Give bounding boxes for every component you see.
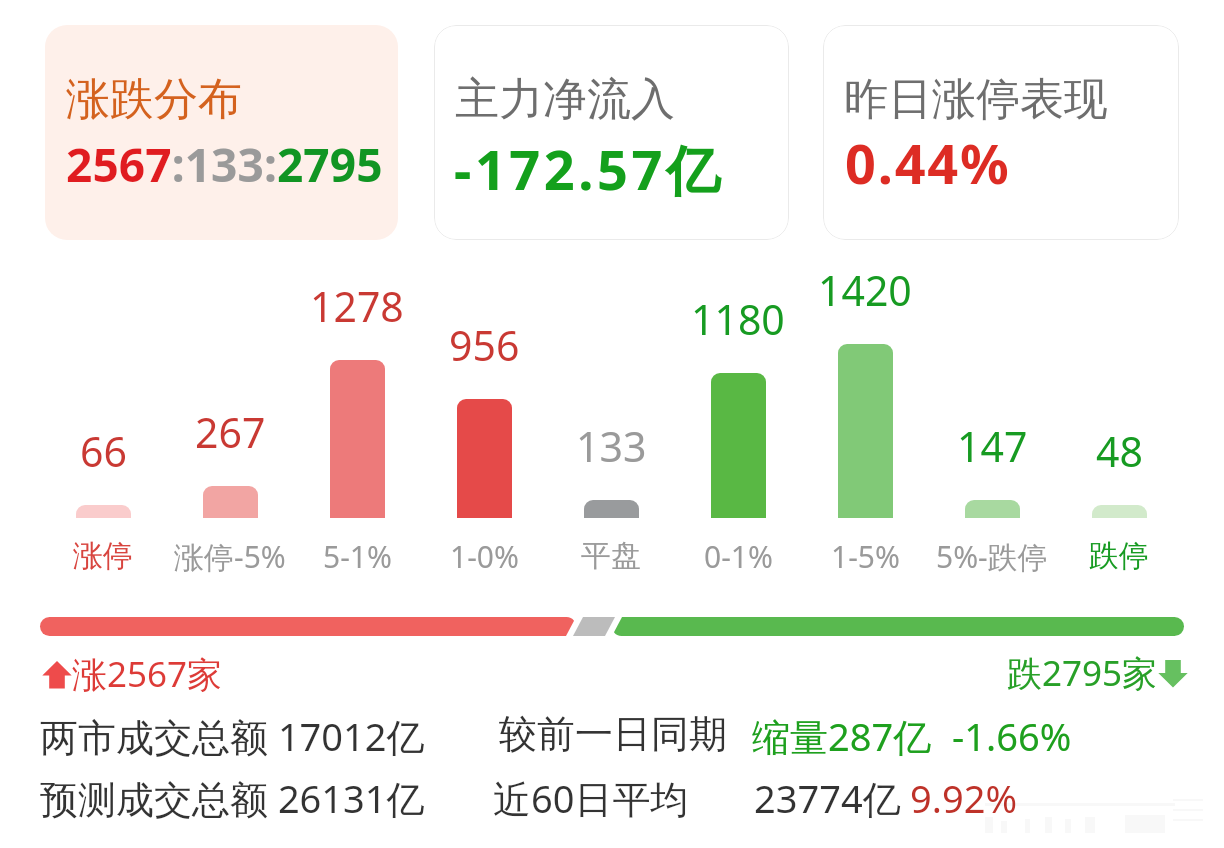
button[interactable]: 267 [167,258,293,576]
button[interactable]: 147 [929,258,1055,576]
staticText: 0-1% [704,536,773,576]
staticText: 近60日平均 [493,772,689,824]
staticText: 5%-跌停 [936,536,1048,576]
other: Advancers [42,659,72,689]
staticText: 133 [576,418,647,470]
button[interactable]: 昨日涨停表现 [823,25,1179,240]
button[interactable]: Advance decline ratio [40,617,1184,636]
staticText: 48 [1096,423,1143,475]
staticText: 1420 [818,262,912,314]
staticText: 5-1% [323,536,392,576]
staticText: 1-5% [831,536,900,576]
staticText: 涨2567家 [72,650,223,698]
staticText: 主力净流入 [455,72,675,127]
staticText: -172.57亿 [454,132,724,206]
staticText: 1180 [691,291,785,343]
staticText: 预测成交总额 26131亿 [40,772,425,824]
staticText: 跌2795家 [1007,649,1158,697]
staticText: 0.44% [845,126,1011,200]
button[interactable]: 1180 [675,258,801,576]
staticText: 147 [957,418,1028,470]
staticText: 两市成交总额 17012亿 [40,710,425,762]
staticText: 昨日涨停表现 [844,72,1108,127]
button[interactable]: 956 [421,258,547,576]
staticText: 23774亿 [754,772,901,824]
button[interactable]: 66 [40,258,166,576]
staticText: 267 [195,404,266,456]
staticText: 1-0% [450,536,519,576]
staticText: 2567:133:2795 [66,133,383,196]
other: Decliners [1158,658,1188,688]
button[interactable]: 涨跌分布 [45,25,398,240]
button[interactable]: Advancers [42,650,223,698]
button[interactable]: 跌2795家 [1007,649,1188,697]
button[interactable]: 1420 [802,258,928,576]
staticText: 较前一日同期 [499,710,727,758]
staticText: 956 [449,317,520,369]
staticText: 缩量287亿 [752,710,932,762]
staticText: 9.92% [910,772,1017,824]
button[interactable]: 48 [1056,258,1182,576]
button[interactable]: 1278 [294,258,420,576]
staticText: 跌停 [1089,537,1149,575]
staticText: -1.66% [952,710,1072,762]
staticText: 涨停 [73,537,133,575]
staticText: 66 [80,423,127,475]
staticText: 1278 [310,278,404,330]
button[interactable]: 主力净流入 [434,25,789,240]
staticText: 涨停-5% [174,536,286,576]
staticText: 平盘 [581,537,641,575]
staticText: 涨跌分布 [66,72,242,127]
button[interactable]: 133 [548,258,674,576]
